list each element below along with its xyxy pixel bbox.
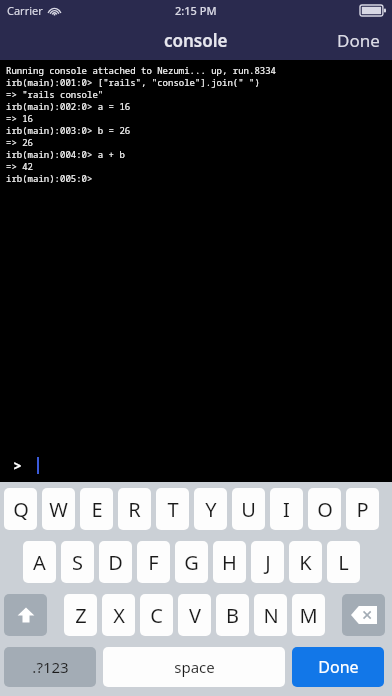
button[interactable]: C <box>140 594 173 636</box>
staticText: R <box>128 496 141 523</box>
button[interactable]: U <box>232 488 265 530</box>
button[interactable]: R <box>118 488 151 530</box>
button[interactable]: X <box>102 594 135 636</box>
staticText: L <box>338 549 349 576</box>
button[interactable]: Done <box>292 647 384 687</box>
button[interactable]: Done <box>325 21 392 60</box>
button[interactable]: J <box>251 541 284 583</box>
staticText: Z <box>75 602 87 629</box>
button[interactable]: G <box>175 541 208 583</box>
button[interactable]: O <box>308 488 341 530</box>
staticText: Done <box>318 656 359 678</box>
staticText: K <box>299 549 312 576</box>
button[interactable]: Z <box>64 594 97 636</box>
staticText: irb(main):002:0> a = 16 <box>6 100 131 112</box>
staticText: => 26 <box>6 136 34 148</box>
staticText: S <box>72 549 83 576</box>
staticText: I <box>283 496 290 523</box>
staticText: irb(main):005:0> <box>6 172 93 184</box>
button[interactable]: W <box>42 488 75 530</box>
button[interactable]: .?123 <box>4 647 96 687</box>
staticText: > <box>13 455 23 475</box>
button[interactable]: N <box>254 594 287 636</box>
staticText: irb(main):003:0> b = 26 <box>6 124 131 136</box>
staticText: A <box>33 549 46 576</box>
staticText: X <box>113 602 125 629</box>
staticText: irb(main):004:0> a + b <box>6 148 125 160</box>
staticText: Y <box>205 496 217 523</box>
staticText: J <box>265 549 271 576</box>
button[interactable]: H <box>213 541 246 583</box>
staticText: => "rails console" <box>6 88 104 100</box>
staticText: Running console attached to Nezumi... up… <box>6 64 277 76</box>
button[interactable]: Q <box>4 488 37 530</box>
button[interactable]: A <box>23 541 56 583</box>
staticText: Done <box>337 29 380 52</box>
button[interactable]: Delete <box>342 594 385 636</box>
staticText: E <box>91 496 103 523</box>
button[interactable]: D <box>99 541 132 583</box>
button[interactable]: > <box>0 448 392 482</box>
button[interactable]: E <box>80 488 113 530</box>
staticText: irb(main):001:0> ["rails", "console"].jo… <box>6 76 260 88</box>
staticText: 2:15 PM <box>175 3 217 18</box>
staticText: F <box>148 549 159 576</box>
staticText: C <box>150 602 163 629</box>
button[interactable]: Y <box>194 488 227 530</box>
button[interactable]: Shift <box>4 594 47 636</box>
button[interactable]: P <box>346 488 379 530</box>
staticText: => 42 <box>6 160 34 172</box>
staticText: N <box>263 602 279 629</box>
staticText: => 16 <box>6 112 34 124</box>
staticText: .?123 <box>32 657 69 677</box>
button[interactable]: T <box>156 488 189 530</box>
staticText: D <box>108 549 123 576</box>
staticText: U <box>241 496 256 523</box>
button[interactable]: S <box>61 541 94 583</box>
staticText: console <box>164 29 228 52</box>
button[interactable]: B <box>216 594 249 636</box>
staticText: T <box>167 496 179 523</box>
staticText: Carrier <box>7 3 43 18</box>
staticText: V <box>189 602 201 629</box>
staticText: Q <box>13 496 29 523</box>
button[interactable]: L <box>327 541 360 583</box>
staticText: P <box>356 496 369 523</box>
button[interactable]: space <box>103 647 285 687</box>
button[interactable]: I <box>270 488 303 530</box>
staticText: G <box>184 549 199 576</box>
button[interactable]: K <box>289 541 322 583</box>
button[interactable]: M <box>292 594 325 636</box>
staticText: B <box>226 602 239 629</box>
button[interactable]: F <box>137 541 170 583</box>
staticText: W <box>49 496 68 523</box>
button[interactable]: V <box>178 594 211 636</box>
staticText: space <box>174 657 215 677</box>
staticText: H <box>222 549 237 576</box>
staticText: M <box>299 602 318 629</box>
staticText: O <box>317 496 333 523</box>
